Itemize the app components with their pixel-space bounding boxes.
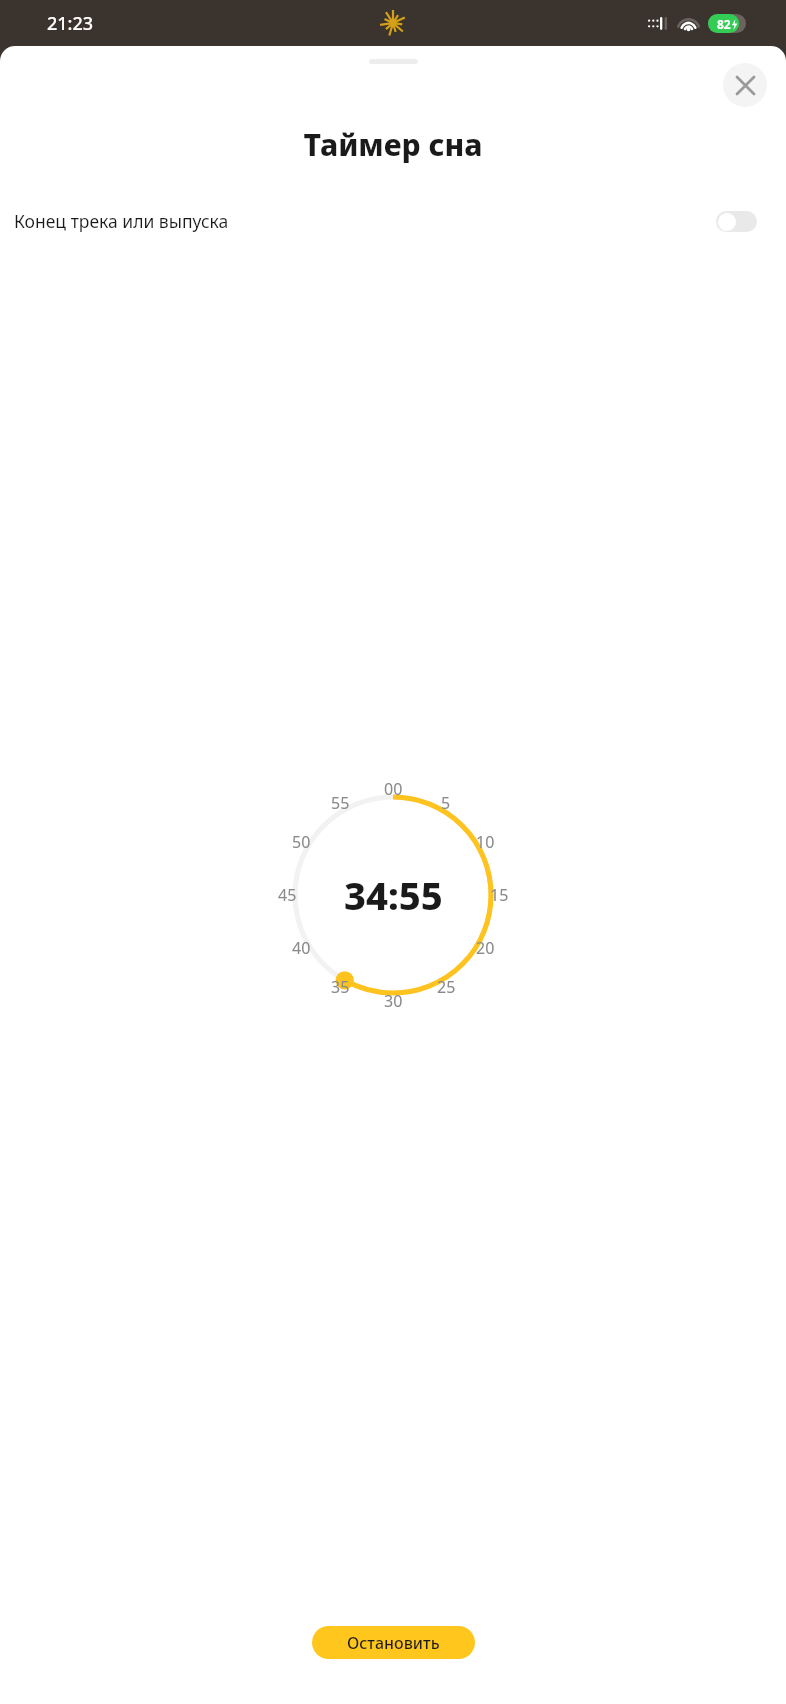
staticText: Конец трека или выпуска — [14, 209, 716, 233]
staticText: 55 — [331, 792, 350, 814]
staticText: 40 — [292, 937, 311, 959]
staticText: 30 — [384, 990, 403, 1012]
button[interactable]: Закрыть — [723, 63, 767, 107]
staticText: 21:23 — [47, 11, 94, 36]
button[interactable]: Конец трека или выпуска — [0, 199, 786, 243]
staticText: 20 — [476, 937, 495, 959]
staticText: 34:55 — [344, 869, 443, 921]
button[interactable]: Остановить — [312, 1626, 475, 1659]
staticText: 82 — [717, 16, 731, 32]
staticText: 15 — [490, 884, 509, 906]
staticText: 50 — [292, 831, 311, 853]
staticText: 25 — [437, 976, 456, 998]
staticText: 00 — [384, 778, 403, 800]
staticText: Остановить — [347, 1632, 440, 1654]
staticText: 10 — [476, 831, 495, 853]
staticText: 5 — [441, 792, 451, 814]
staticText: 45 — [278, 884, 297, 906]
staticText: 35 — [331, 976, 350, 998]
staticText: Таймер сна — [0, 124, 786, 165]
